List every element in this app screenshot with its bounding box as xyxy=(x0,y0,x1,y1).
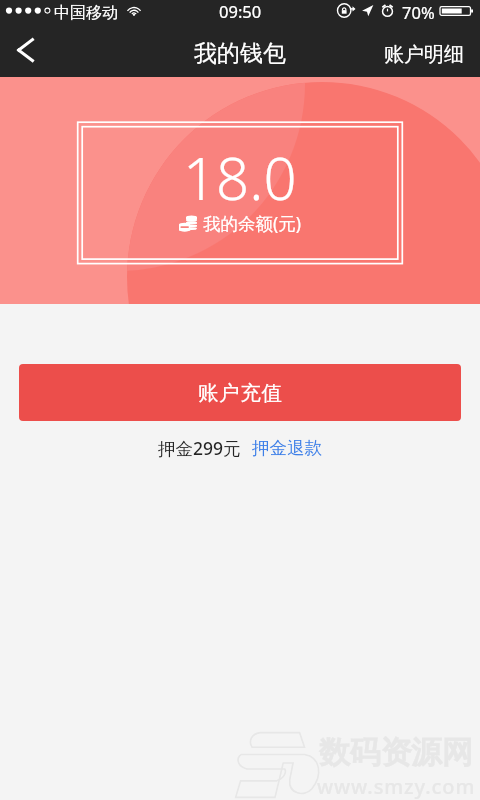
button[interactable]: 押金退款 xyxy=(252,437,322,459)
staticText: 我的余额(元) xyxy=(203,211,301,235)
staticText: www.smzy.com xyxy=(317,773,476,800)
staticText: 账户充值 xyxy=(198,380,283,406)
button[interactable]: 账户充值 xyxy=(19,364,461,421)
staticText: 我的钱包 xyxy=(194,39,286,68)
staticText: 账户明细 xyxy=(384,42,464,65)
staticText: 押金退款 xyxy=(252,437,322,459)
staticText: 09:50 xyxy=(219,0,262,22)
staticText: 中国移动 xyxy=(54,3,118,23)
staticText: 70% xyxy=(402,1,435,23)
staticText: 18.0 xyxy=(183,138,297,217)
staticText: 押金299元 xyxy=(158,436,241,460)
staticText: 数码资源网 xyxy=(319,733,473,772)
button[interactable]: 账户明细 xyxy=(368,30,480,77)
button[interactable]: Back xyxy=(0,30,50,77)
